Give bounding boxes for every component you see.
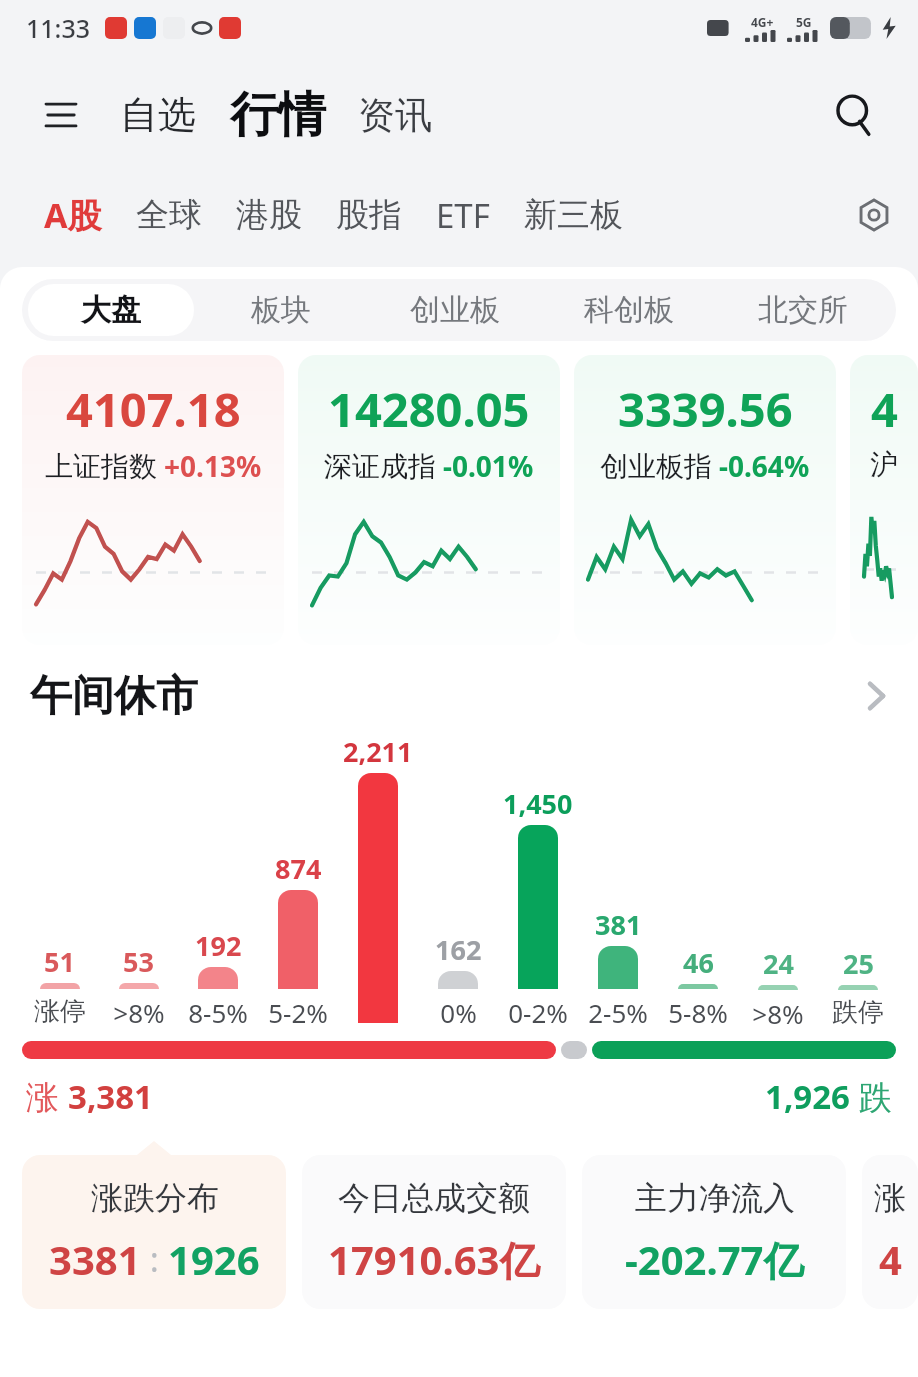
staticText: 51 — [44, 943, 75, 980]
staticText: >8% — [113, 995, 165, 1029]
staticText: 涨停 — [34, 995, 86, 1028]
staticText: 沪 — [870, 447, 898, 482]
staticText: ETF — [436, 193, 490, 238]
button[interactable]: Menu — [34, 88, 88, 142]
staticText: 8-5% — [188, 995, 248, 1029]
staticText: : — [141, 1236, 168, 1282]
button[interactable]: 科创板 — [542, 284, 716, 336]
staticText: 25 — [843, 945, 874, 982]
button[interactable]: 板块 — [194, 284, 368, 336]
staticText: 上证指数 — [45, 449, 157, 484]
staticText: 5-2% — [268, 995, 328, 1029]
button[interactable]: 自选 — [116, 91, 200, 139]
staticText: 科创板 — [584, 291, 674, 329]
staticText: 资讯 — [358, 92, 432, 139]
staticText: 大盘 — [81, 291, 141, 329]
button[interactable]: 北交所 — [716, 284, 890, 336]
staticText: 24 — [763, 945, 794, 982]
staticText: 股指 — [336, 194, 402, 236]
staticText: 行情 — [230, 85, 326, 145]
staticText: 港股 — [236, 194, 302, 236]
staticText: 北交所 — [758, 291, 848, 329]
staticText: 涨 — [874, 1178, 906, 1218]
button[interactable]: 全球 — [122, 188, 216, 242]
staticText: 跌 — [850, 1074, 892, 1119]
staticText: 2-5% — [588, 995, 648, 1029]
staticText: 3339.56 — [618, 377, 793, 441]
button[interactable]: 涨 — [862, 1155, 918, 1309]
staticText: 全球 — [136, 194, 202, 236]
staticText: 3381 — [49, 1232, 141, 1286]
staticText: 17910.63亿 — [328, 1232, 540, 1287]
button[interactable]: 港股 — [222, 188, 316, 242]
button[interactable]: 4107.18 — [22, 355, 284, 645]
button[interactable]: Search — [826, 86, 884, 144]
staticText: 涨 — [26, 1074, 68, 1119]
staticText: 4107.18 — [66, 377, 241, 441]
button[interactable]: 创业板 — [368, 284, 542, 336]
button[interactable]: 资讯 — [354, 92, 436, 139]
staticText: 381 — [595, 906, 642, 943]
staticText: 192 — [195, 927, 242, 964]
staticText: 4 — [879, 1232, 902, 1286]
staticText: 今日总成交额 — [338, 1178, 530, 1218]
staticText: 162 — [435, 931, 482, 968]
staticText: 3,381 — [68, 1074, 153, 1119]
staticText: 自选 — [120, 91, 196, 139]
button[interactable]: 3339.56 — [574, 355, 836, 645]
button[interactable]: 新三板 — [510, 188, 637, 242]
staticText: 5-8% — [668, 995, 728, 1029]
button[interactable]: 主力净流入 — [582, 1155, 846, 1309]
button[interactable]: 大盘 — [28, 284, 194, 336]
staticText: A股 — [44, 192, 102, 238]
button[interactable]: 午间休市 — [0, 659, 918, 733]
staticText: 1,450 — [503, 785, 573, 822]
staticText: 2,211 — [343, 733, 413, 770]
staticText: +0.13% — [164, 447, 262, 485]
staticText: 主力净流入 — [635, 1178, 795, 1218]
staticText: 874 — [275, 850, 322, 887]
staticText: -0.01% — [443, 447, 534, 485]
button[interactable]: A股 — [30, 186, 116, 244]
staticText: -202.77亿 — [625, 1232, 804, 1287]
staticText: 11:33 — [26, 11, 91, 45]
button[interactable]: Settings — [848, 189, 900, 241]
staticText: 0-2% — [508, 995, 568, 1029]
staticText: 46 — [683, 944, 714, 981]
staticText: 午间休市 — [30, 670, 198, 723]
staticText: 涨跌分布 — [91, 1178, 219, 1218]
staticText: 1926 — [168, 1232, 260, 1286]
staticText: 创业板指 — [600, 449, 712, 484]
button[interactable]: ETF — [422, 187, 504, 244]
button[interactable]: 今日总成交额 — [302, 1155, 566, 1309]
button[interactable]: 股指 — [322, 188, 416, 242]
button[interactable]: 4 — [850, 355, 918, 645]
staticText: 跌停 — [832, 996, 884, 1029]
staticText: 14280.05 — [328, 377, 530, 441]
staticText: 4 — [871, 377, 898, 441]
staticText: 5G — [796, 14, 812, 30]
staticText: 创业板 — [410, 291, 500, 329]
staticText: >8% — [752, 996, 804, 1029]
button[interactable]: 14280.05 — [298, 355, 560, 645]
staticText: 新三板 — [524, 194, 623, 236]
staticText: 53 — [123, 943, 154, 980]
staticText: 板块 — [251, 291, 311, 329]
staticText: 4G+ — [751, 14, 774, 30]
button[interactable]: 行情 — [226, 85, 330, 145]
staticText: 1,926 — [765, 1074, 850, 1119]
staticText: 0% — [440, 995, 477, 1029]
staticText: 深证成指 — [324, 449, 436, 484]
staticText: -0.64% — [719, 447, 810, 485]
button[interactable]: 涨跌分布 — [22, 1155, 286, 1309]
